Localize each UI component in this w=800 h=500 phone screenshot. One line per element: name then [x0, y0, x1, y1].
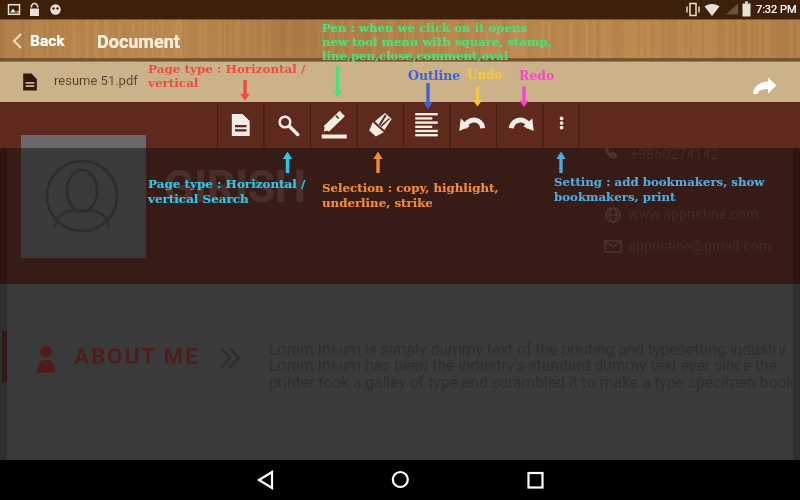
button[interactable]: More options	[547, 103, 583, 147]
button[interactable]: Home	[370, 460, 430, 500]
button[interactable]: Page type	[218, 103, 265, 147]
button[interactable]: Recent apps	[504, 460, 564, 500]
staticText: Setting : add bookmakers, show bookmaker…	[554, 175, 765, 204]
button[interactable]: Undo	[453, 103, 500, 147]
staticText: GIRISH	[164, 161, 306, 213]
staticText: +9860274142	[630, 146, 719, 163]
button[interactable]: Outline	[406, 103, 453, 147]
staticText: Redo	[519, 68, 555, 83]
button[interactable]: Search	[265, 103, 312, 147]
staticText: www.appristine.com	[628, 206, 759, 223]
staticText: Undo	[467, 68, 503, 82]
staticText: Back	[30, 32, 65, 50]
staticText: Selection : copy, highlight, underline, …	[322, 181, 499, 210]
button[interactable]: Pen	[312, 103, 359, 147]
staticText: Document	[97, 31, 180, 52]
staticText: Page type : Horizontal / vertical Search	[148, 177, 306, 206]
button[interactable]: resume 51.pdf	[8, 62, 208, 101]
staticText: Pen : when we click on it opens new tool…	[322, 21, 552, 63]
button[interactable]: Highlight	[359, 103, 406, 147]
button[interactable]: Share	[742, 65, 786, 99]
staticText: 7:32 PM	[756, 3, 797, 16]
button[interactable]: Redo	[500, 103, 547, 147]
staticText: Outline	[408, 68, 461, 83]
staticText: Page type : Horizontal / vertical	[148, 62, 306, 90]
button[interactable]: Back	[6, 22, 76, 56]
button[interactable]: Back	[231, 460, 291, 500]
staticText: appristine@gmail.com	[628, 238, 772, 255]
staticText: Lorem Ipsum is simply dummy text of the …	[269, 340, 795, 392]
staticText: ABOUT ME	[74, 343, 200, 369]
staticText: resume 51.pdf	[54, 73, 138, 88]
